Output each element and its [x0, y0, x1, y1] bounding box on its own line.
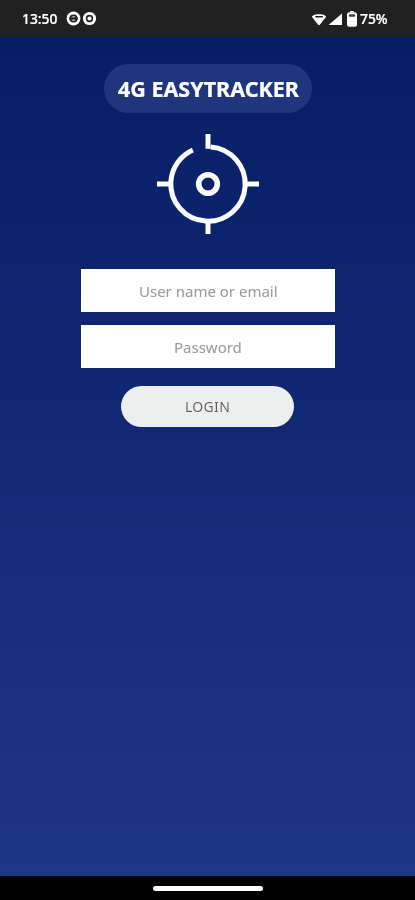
other: Mobile signal	[328, 11, 342, 26]
staticText: User name or email	[139, 281, 278, 301]
button[interactable]: Password	[81, 325, 335, 368]
other: Notification	[66, 11, 81, 26]
other: Home gesture handle	[153, 886, 263, 891]
staticText: LOGIN	[185, 397, 231, 416]
staticText: 75%	[360, 9, 388, 28]
button[interactable]: 4G EASYTRACKER	[104, 64, 312, 113]
staticText: Password	[174, 337, 242, 357]
button[interactable]: LOGIN	[121, 386, 294, 427]
other: GPS tracker logo	[157, 134, 259, 234]
other: Battery 75 percent	[347, 11, 357, 27]
staticText: 4G EASYTRACKER	[118, 74, 299, 103]
other: Wi-Fi	[312, 11, 326, 26]
button[interactable]: User name or email	[81, 269, 335, 312]
staticText: 13:50	[22, 9, 58, 28]
other: Notification	[82, 11, 97, 26]
